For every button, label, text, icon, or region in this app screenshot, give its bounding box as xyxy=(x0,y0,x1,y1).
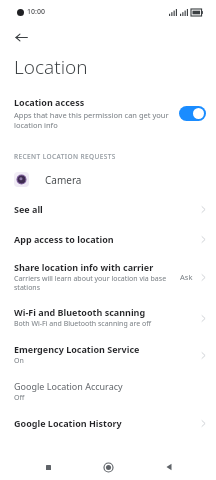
staticText: Ask xyxy=(180,272,193,282)
staticText: Google Location Accuracy xyxy=(14,380,123,392)
staticText: App access to location xyxy=(14,233,114,245)
staticText: Location xyxy=(14,54,88,80)
staticText: See all xyxy=(14,203,43,215)
staticText: 10:00 xyxy=(27,7,45,17)
staticText: Share location info with carrier xyxy=(14,261,154,273)
staticText: Off xyxy=(14,393,25,403)
button[interactable]: Emergency Location Service xyxy=(0,336,216,373)
button[interactable]: Location access xyxy=(0,90,216,138)
button[interactable]: Wi-Fi and Bluetooth scanning xyxy=(0,299,216,336)
staticText: Wi-Fi and Bluetooth scanning xyxy=(14,306,146,318)
button[interactable]: Google Location History xyxy=(0,410,216,436)
staticText: Both Wi-Fi and Bluetooth scanning are of… xyxy=(14,319,152,329)
button[interactable]: Home xyxy=(95,454,121,480)
button[interactable]: App access to location xyxy=(0,224,216,254)
staticText: Google Location History xyxy=(14,417,122,429)
button[interactable]: Back xyxy=(156,454,182,480)
staticText: Carriers will learn about your location … xyxy=(14,274,176,292)
button[interactable]: See all xyxy=(0,194,216,224)
staticText: Apps that have this permission can get y… xyxy=(14,110,173,130)
button[interactable]: Share location info with carrier xyxy=(0,254,216,299)
staticText: On xyxy=(14,356,24,366)
button[interactable]: Camera xyxy=(0,167,216,194)
button[interactable]: Back xyxy=(9,25,33,49)
staticText: Emergency Location Service xyxy=(14,343,140,355)
button[interactable]: Location access toggle xyxy=(179,106,206,121)
staticText: RECENT LOCATION REQUESTS xyxy=(14,152,116,161)
button[interactable]: Recents xyxy=(35,454,61,480)
button[interactable]: Google Location Accuracy xyxy=(0,373,216,410)
staticText: Location access xyxy=(14,96,85,108)
staticText: Camera xyxy=(45,173,82,187)
